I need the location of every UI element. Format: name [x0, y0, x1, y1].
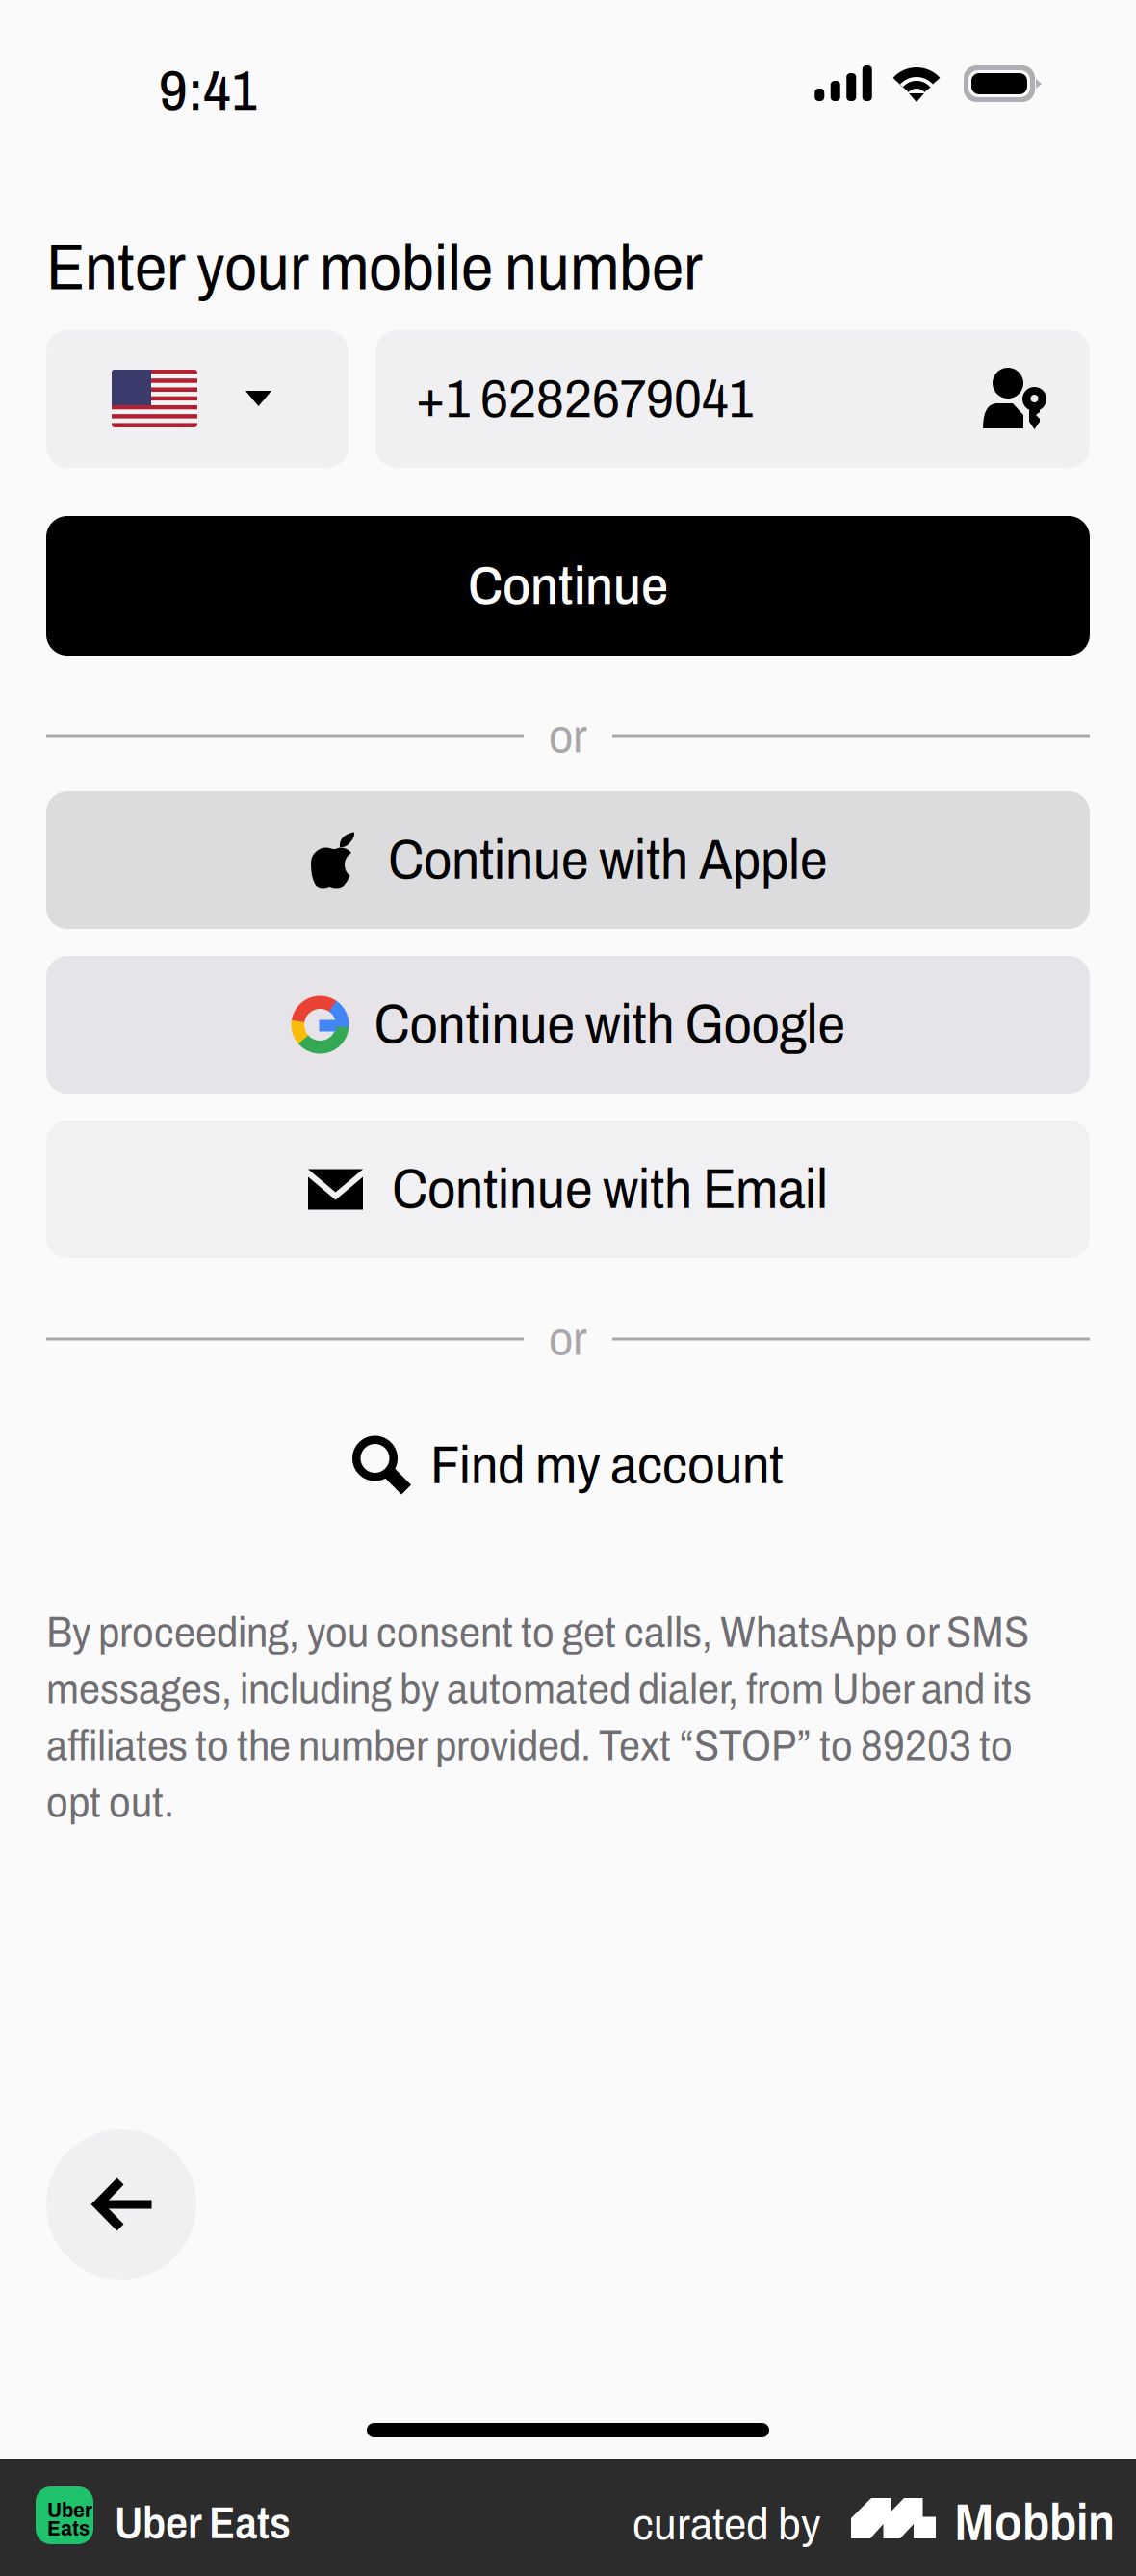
button[interactable]: Continue with Google [46, 956, 1090, 1094]
staticText: Enter your mobile number [46, 233, 703, 303]
staticText: Eats [47, 2516, 90, 2540]
staticText: +1 6282679041 [415, 370, 754, 428]
button[interactable]: Country code [46, 330, 349, 468]
staticText: or [549, 711, 587, 762]
button[interactable]: Find my account [46, 1417, 1090, 1513]
staticText: 9:41 [159, 62, 258, 122]
staticText: Continue with Email [392, 1159, 828, 1219]
staticText: or [549, 1313, 587, 1365]
staticText: Continue with Google [374, 995, 845, 1055]
staticText: By proceeding, you consent to get calls,… [46, 1610, 1032, 1826]
button[interactable]: Continue [46, 516, 1090, 656]
button[interactable]: Continue with Email [46, 1121, 1090, 1258]
button[interactable]: Continue with Apple [46, 791, 1090, 929]
staticText: Uber Eats [115, 2500, 291, 2547]
staticText: Continue with Apple [388, 830, 827, 890]
staticText: Continue [468, 556, 668, 615]
button[interactable]: Back [46, 2129, 196, 2280]
staticText: Find my account [430, 1436, 784, 1494]
staticText: Uber [47, 2498, 92, 2522]
staticText: Mobbin [954, 2495, 1115, 2551]
button[interactable]: +1 6282679041 [375, 330, 1090, 468]
staticText: curated by [633, 2500, 821, 2549]
